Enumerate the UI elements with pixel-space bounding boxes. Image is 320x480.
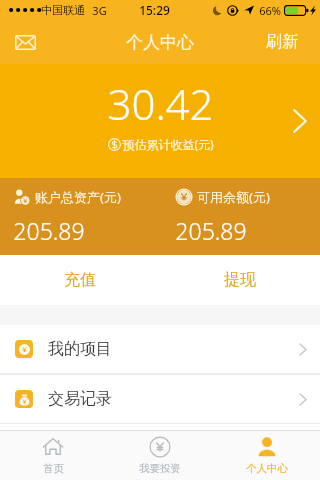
staticText: 预估累计收益(元) [122,136,214,152]
button[interactable]: 首页 [0,431,106,480]
staticText: 个人中心 [246,462,288,475]
staticText: 首页 [43,462,64,475]
button[interactable]: 我要投资 [106,431,213,480]
button[interactable]: 交易记录 [0,375,320,423]
staticText: 个人中心 [126,32,194,53]
button[interactable]: 充值 [0,255,160,305]
staticText: 提现 [224,270,256,290]
button[interactable]: Messages [6,23,44,61]
staticText: 我的项目 [48,339,112,359]
staticText: 我要投资 [139,462,181,475]
button[interactable]: 提现 [160,255,320,305]
staticText: 15:29 [139,2,170,18]
staticText: 3G [92,3,107,18]
staticText: 交易记录 [48,389,112,409]
button[interactable]: 我的项目 [0,325,320,373]
staticText: 30.42 [107,75,214,132]
staticText: 充值 [64,270,96,290]
staticText: 中国联通 [41,3,85,17]
staticText: 刷新 [266,32,298,52]
button[interactable]: 个人中心 [213,431,320,480]
staticText: 66% [259,3,281,18]
staticText: 205.89 [175,215,247,246]
button[interactable]: 可用余额(元) [160,178,320,255]
staticText: 205.89 [13,215,85,246]
button[interactable]: 30.42 [0,64,320,178]
staticText: 可用余额(元) [197,188,270,206]
button[interactable]: 刷新 [263,24,301,60]
button[interactable]: 账户总资产(元) [0,178,160,255]
staticText: 账户总资产(元) [35,188,121,206]
